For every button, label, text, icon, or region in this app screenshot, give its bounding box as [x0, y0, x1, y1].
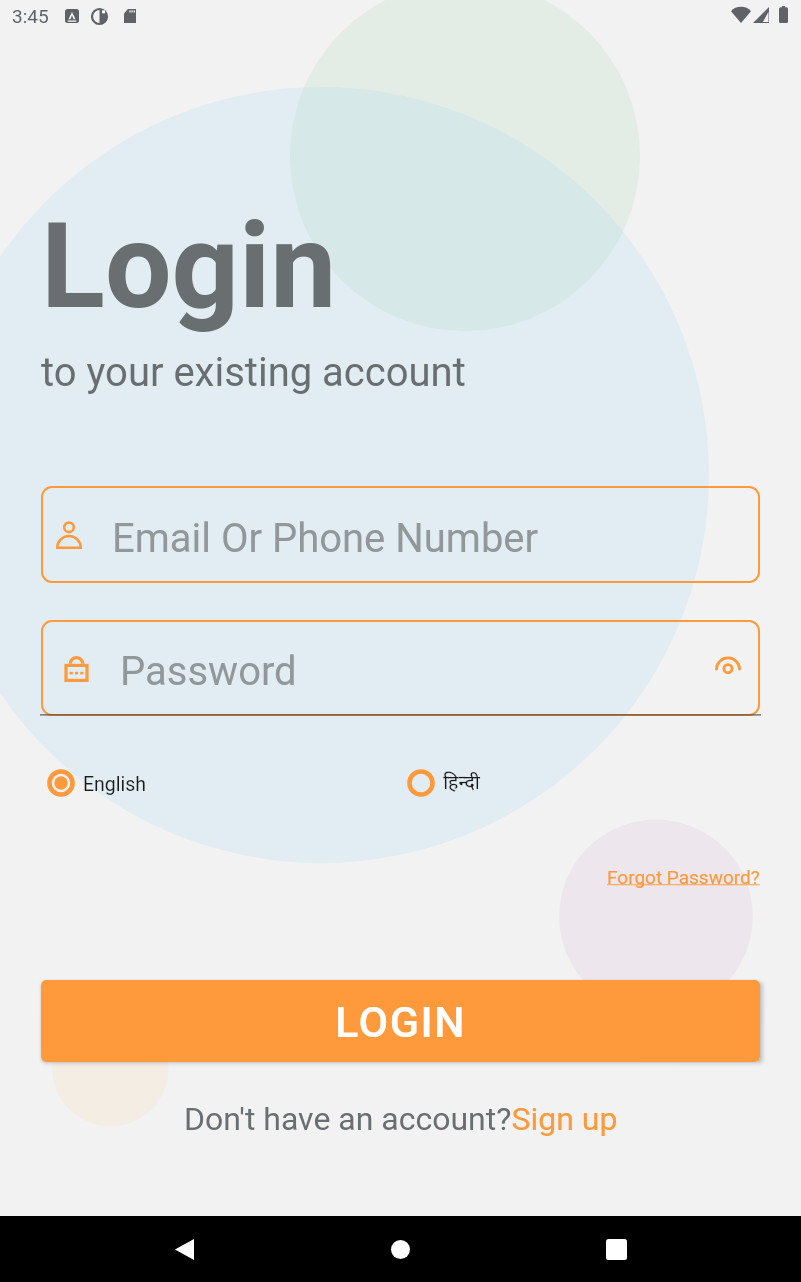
staticText: LOGIN — [335, 997, 467, 1047]
button[interactable]: हिन्दी — [407, 769, 480, 797]
button[interactable]: Don't have an account?Sign up — [184, 1100, 618, 1138]
button[interactable]: Back — [151, 1216, 217, 1282]
staticText: Password — [120, 648, 297, 695]
staticText: to your existing account — [41, 349, 466, 396]
button[interactable]: Password — [41, 620, 760, 716]
staticText: Login — [41, 198, 337, 336]
staticText: English — [83, 773, 147, 796]
staticText: हिन्दी — [443, 772, 480, 797]
button[interactable]: LOGIN — [41, 980, 760, 1062]
button[interactable]: English — [47, 769, 147, 797]
button[interactable]: Email Or Phone Number — [41, 486, 760, 583]
button[interactable]: Home — [367, 1216, 433, 1282]
staticText: Email Or Phone Number — [112, 515, 539, 562]
button[interactable]: Recents — [583, 1216, 649, 1282]
staticText: 3:45 — [12, 5, 49, 27]
button[interactable]: Forgot Password? — [607, 866, 760, 888]
button[interactable]: Show password — [702, 642, 754, 694]
